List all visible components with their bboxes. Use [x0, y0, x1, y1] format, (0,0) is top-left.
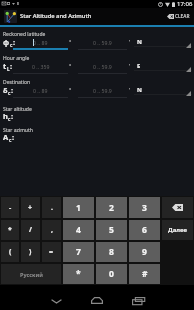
staticText: Далее: [168, 226, 187, 234]
staticText: Русский: [20, 271, 43, 278]
staticText: 0 .. 359: [32, 63, 50, 70]
staticText: 4: [76, 224, 81, 236]
staticText: :: [10, 61, 13, 71]
button[interactable]: 0 .. 59.9: [78, 38, 127, 50]
button[interactable]: Hide keyboard: [40, 287, 72, 308]
staticText: ': [129, 38, 131, 45]
staticText: t: [3, 61, 7, 71]
button[interactable]: 1: [63, 197, 94, 218]
staticText: °: [69, 86, 72, 93]
staticText: 7: [76, 246, 81, 258]
staticText: *: [76, 268, 81, 280]
button[interactable]: 0: [96, 264, 127, 284]
button[interactable]: 2: [96, 197, 127, 218]
staticText: 2: [109, 202, 114, 214]
staticText: 3: [142, 202, 147, 214]
staticText: 8: [109, 246, 114, 258]
staticText: 6: [142, 224, 147, 236]
button[interactable]: 5: [96, 220, 127, 240]
button[interactable]: .: [42, 197, 61, 218]
staticText: c: [10, 42, 13, 48]
button[interactable]: *: [63, 264, 94, 284]
staticText: c: [8, 116, 11, 122]
button[interactable]: 9: [129, 242, 160, 262]
staticText: (: [9, 247, 12, 257]
staticText: -: [9, 203, 12, 213]
staticText: δ: [3, 85, 8, 95]
button[interactable]: ): [21, 242, 40, 262]
staticText: 0 .. 59.9: [93, 63, 112, 70]
staticText: Star Altitude and Azimuth: [20, 12, 92, 20]
staticText: :: [11, 111, 14, 121]
button[interactable]: CLEAR: [167, 9, 190, 23]
staticText: 9: [142, 246, 147, 258]
staticText: *: [8, 225, 12, 235]
staticText: =: [49, 247, 54, 257]
staticText: Reckoned latitude: [3, 31, 46, 38]
staticText: °: [69, 38, 72, 45]
staticText: N: [137, 38, 142, 46]
button[interactable]: 0 .. 89: [13, 86, 68, 98]
staticText: 0 .. 89: [33, 87, 48, 94]
button[interactable]: Home: [81, 287, 113, 308]
button[interactable]: #: [129, 264, 160, 284]
staticText: L: [7, 66, 10, 72]
staticText: ': [129, 62, 131, 69]
staticText: +: [28, 203, 33, 213]
staticText: °: [69, 62, 72, 69]
staticText: /: [29, 225, 32, 235]
button[interactable]: E: [134, 60, 192, 73]
staticText: 5: [109, 224, 114, 236]
staticText: A: [3, 132, 9, 142]
staticText: ,: [51, 225, 53, 235]
button[interactable]: Backspace: [162, 197, 193, 218]
button[interactable]: 8: [96, 242, 127, 262]
staticText: c: [8, 90, 11, 96]
button[interactable]: (: [1, 242, 19, 262]
button[interactable]: Русский: [1, 264, 61, 284]
staticText: E: [137, 62, 141, 70]
button[interactable]: Navigate up: [4, 10, 17, 23]
button[interactable]: ,: [42, 220, 61, 240]
button[interactable]: 0 .. 359: [13, 62, 68, 74]
button[interactable]: 4: [63, 220, 94, 240]
staticText: φ: [3, 37, 10, 47]
staticText: 0: [109, 268, 114, 280]
button[interactable]: N: [134, 84, 192, 97]
staticText: #: [142, 268, 148, 280]
button[interactable]: /: [21, 220, 40, 240]
staticText: .: [51, 203, 53, 213]
button[interactable]: Далее: [162, 220, 193, 240]
staticText: 0 .. 59.9: [93, 87, 112, 94]
button[interactable]: 7: [63, 242, 94, 262]
button[interactable]: 0 .. 59.9: [78, 62, 127, 74]
staticText: Star azimuth: [3, 127, 33, 134]
staticText: Star altitude: [3, 106, 32, 113]
staticText: N: [137, 86, 142, 94]
staticText: 1: [76, 202, 81, 214]
staticText: h: [3, 111, 8, 121]
staticText: 0 .. 89: [33, 39, 48, 46]
button[interactable]: Recent apps: [123, 287, 155, 308]
staticText: c: [9, 137, 12, 143]
staticText: :: [12, 132, 15, 142]
button[interactable]: 3: [129, 197, 160, 218]
staticText: Hour angle: [3, 55, 30, 62]
button[interactable]: -: [1, 197, 19, 218]
staticText: :: [11, 85, 14, 95]
button[interactable]: N: [134, 36, 192, 49]
button[interactable]: +: [21, 197, 40, 218]
staticText: ): [29, 247, 32, 257]
button[interactable]: 0 .. 89: [13, 38, 68, 50]
button[interactable]: =: [42, 242, 61, 262]
staticText: CLEAR: [175, 13, 190, 20]
staticText: 0 .. 59.9: [93, 39, 112, 46]
staticText: :: [13, 37, 16, 47]
button[interactable]: 0 .. 59.9: [78, 86, 127, 98]
staticText: 17:06: [177, 0, 193, 8]
button[interactable]: *: [1, 220, 19, 240]
button[interactable]: 6: [129, 220, 160, 240]
staticText: Destination: [3, 79, 31, 86]
staticText: ': [129, 86, 131, 93]
